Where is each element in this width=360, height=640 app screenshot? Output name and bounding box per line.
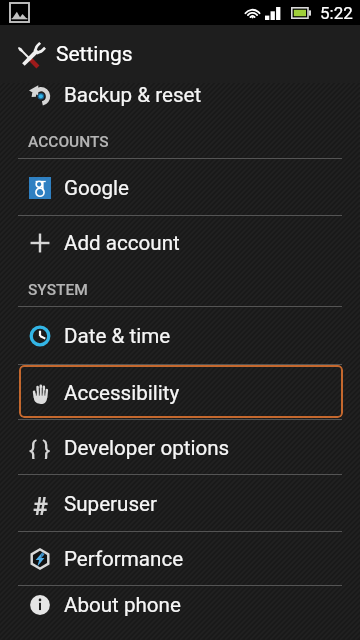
- staticText: { }: [29, 437, 51, 459]
- staticText: #: [33, 493, 48, 515]
- staticText: ACCOUNTS: [28, 133, 109, 151]
- button[interactable]: Backup & reset: [0, 83, 360, 123]
- staticText: About phone: [64, 593, 181, 617]
- staticText: Performance: [64, 547, 184, 571]
- button[interactable]: #: [0, 475, 360, 532]
- staticText: Google: [64, 176, 130, 200]
- button[interactable]: Add account: [0, 216, 360, 269]
- button[interactable]: About phone: [0, 586, 360, 623]
- button[interactable]: { }: [0, 420, 360, 475]
- button[interactable]: Google: [0, 159, 360, 216]
- staticText: Backup & reset: [64, 83, 202, 107]
- staticText: Date & time: [64, 324, 171, 348]
- button[interactable]: Performance: [0, 532, 360, 586]
- button[interactable]: Date & time: [0, 307, 360, 365]
- staticText: Settings: [56, 42, 133, 67]
- staticText: Accessibility: [64, 381, 180, 405]
- staticText: Developer options: [64, 436, 230, 460]
- staticText: 5:22: [320, 3, 353, 23]
- staticText: Superuser: [64, 492, 157, 516]
- staticText: SYSTEM: [28, 281, 88, 299]
- staticText: Add account: [64, 231, 180, 255]
- button[interactable]: Accessibility: [0, 365, 360, 420]
